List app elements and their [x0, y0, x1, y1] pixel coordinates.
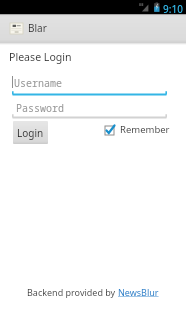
staticText: Backend provided by	[27, 286, 118, 298]
button[interactable]: Password	[12, 100, 167, 119]
button[interactable]: NewsBlur	[118, 286, 159, 298]
staticText: Login	[17, 126, 44, 140]
staticText: Password	[16, 101, 64, 115]
button[interactable]: Login	[13, 121, 48, 144]
staticText: Please Login	[9, 50, 72, 64]
staticText: Remember	[120, 123, 170, 136]
staticText: 9:10	[163, 2, 183, 16]
button[interactable]: Username	[12, 77, 167, 96]
staticText: Blar	[28, 21, 47, 35]
button[interactable]: Remember	[103, 123, 170, 136]
staticText: Username	[14, 76, 62, 90]
